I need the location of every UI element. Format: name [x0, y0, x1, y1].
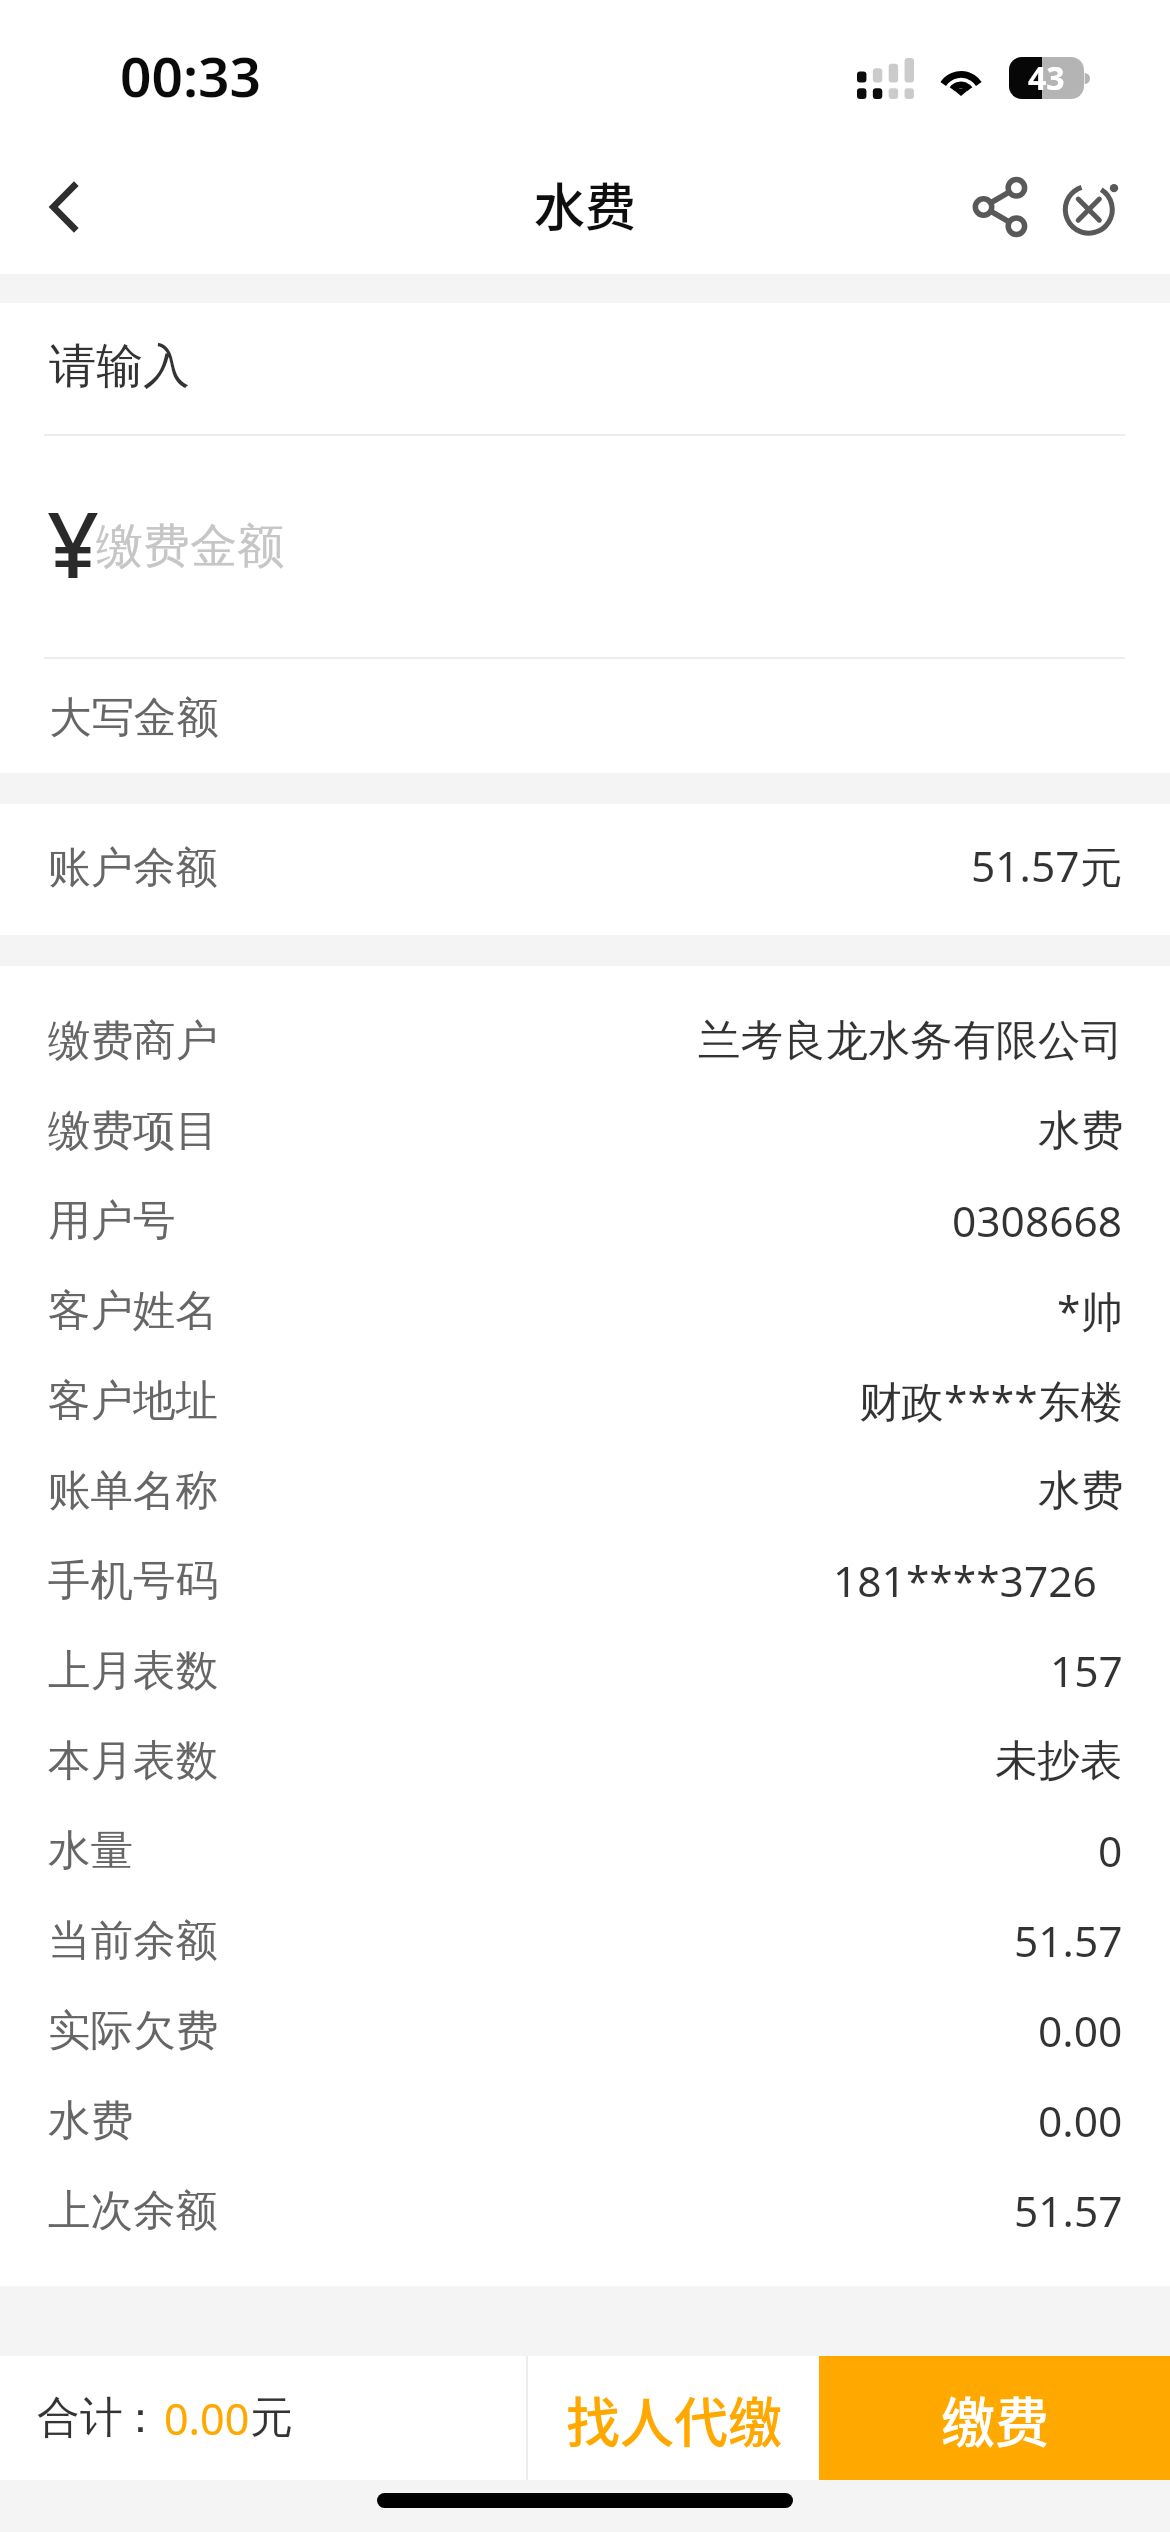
staticText: ：	[119, 2391, 162, 2445]
staticText: ¥	[47, 481, 100, 605]
button[interactable]: 账单名称	[0, 1446, 1170, 1536]
staticText: 未抄表	[995, 1734, 1123, 1788]
staticText: 00:33	[120, 38, 262, 113]
button[interactable]: 水费	[0, 2076, 1170, 2166]
staticText: 客户地址	[48, 1374, 218, 1428]
staticText: 客户姓名	[48, 1284, 218, 1338]
staticText: 大写金额	[49, 691, 219, 745]
button[interactable]: 缴费商户	[0, 996, 1170, 1086]
staticText: 账户余额	[48, 841, 218, 895]
button[interactable]: 找人代缴	[528, 2356, 819, 2480]
button[interactable]: 上月表数	[0, 1626, 1170, 1716]
staticText: 水量	[48, 1824, 133, 1878]
button[interactable]: 水量	[0, 1806, 1170, 1896]
staticText: 手机号码	[48, 1554, 218, 1608]
button[interactable]: Back	[0, 140, 118, 274]
staticText: 0.00	[164, 2389, 250, 2448]
button[interactable]: 当前余额	[0, 1896, 1170, 1986]
staticText: 43	[1028, 57, 1065, 98]
staticText: 缴费项目	[48, 1104, 218, 1158]
staticText: 181****3726	[833, 1552, 1097, 1610]
staticText: 51.57元	[971, 837, 1123, 895]
staticText: 缴费	[941, 2380, 1049, 2458]
staticText: 157	[1050, 1642, 1123, 1700]
button[interactable]: Close	[1037, 140, 1151, 274]
staticText: 水费	[48, 2094, 133, 2148]
staticText: 兰考良龙水务有限公司	[698, 1014, 1123, 1068]
button[interactable]: 用户号	[0, 1176, 1170, 1266]
staticText: 0308668	[952, 1192, 1123, 1250]
staticText: 缴费商户	[48, 1014, 218, 1068]
staticText: 上月表数	[48, 1644, 218, 1698]
staticText: 0.00	[1038, 2002, 1123, 2060]
staticText: 找人代缴	[566, 2380, 782, 2458]
staticText: 财政****东楼	[859, 1372, 1123, 1430]
staticText: 缴费金额	[96, 517, 284, 576]
staticText: 51.57	[1014, 2182, 1123, 2240]
staticText: 本月表数	[48, 1734, 218, 1788]
button[interactable]: 缴费	[819, 2356, 1170, 2480]
staticText: 上次余额	[48, 2184, 218, 2238]
staticText: 当前余额	[48, 1914, 218, 1968]
button[interactable]: 手机号码	[0, 1536, 1170, 1626]
staticText: 水费	[1038, 1464, 1123, 1518]
button[interactable]: 上次余额	[0, 2166, 1170, 2256]
button[interactable]: 客户姓名	[0, 1266, 1170, 1356]
staticText: 元	[250, 2391, 293, 2445]
button[interactable]: 本月表数	[0, 1716, 1170, 1806]
staticText: 水费	[534, 167, 637, 241]
staticText: 实际欠费	[48, 2004, 218, 2058]
staticText: 合计	[37, 2391, 123, 2445]
staticText: 账单名称	[48, 1464, 218, 1518]
button[interactable]: Share	[933, 140, 1037, 274]
button[interactable]: 实际欠费	[0, 1986, 1170, 2076]
staticText: 0.00	[1038, 2092, 1123, 2150]
button[interactable]: 缴费项目	[0, 1086, 1170, 1176]
staticText: 0	[1098, 1822, 1123, 1880]
staticText: 51.57	[1014, 1912, 1123, 1970]
button[interactable]: 账户余额	[0, 804, 1170, 935]
button[interactable]: 客户地址	[0, 1356, 1170, 1446]
staticText: 用户号	[48, 1194, 176, 1248]
staticText: 请输入	[49, 337, 190, 396]
staticText: *帅	[1057, 1282, 1123, 1340]
staticText: 水费	[1038, 1104, 1123, 1158]
